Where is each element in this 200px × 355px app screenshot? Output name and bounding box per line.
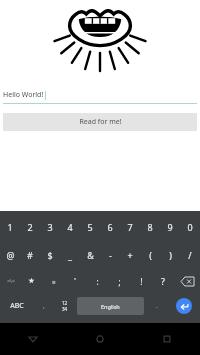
button[interactable]: Read for me! xyxy=(3,113,197,131)
button[interactable]: 2 xyxy=(20,213,40,241)
button[interactable]: ★ xyxy=(21,269,42,293)
staticText: $ xyxy=(47,249,53,261)
button[interactable]: ! xyxy=(130,269,152,293)
staticText: 7 xyxy=(127,221,133,233)
staticText: ▪ xyxy=(51,278,56,285)
staticText: 1 xyxy=(7,221,13,233)
staticText: ★ xyxy=(28,277,35,285)
button[interactable]: Numbers xyxy=(54,293,75,319)
staticText: ( xyxy=(149,249,152,261)
staticText: : xyxy=(96,276,99,287)
button[interactable]: ( xyxy=(140,241,160,269)
button[interactable]: ? xyxy=(152,269,174,293)
staticText: ; xyxy=(118,276,121,287)
staticText: ! xyxy=(140,275,143,287)
button[interactable]: Home xyxy=(66,323,133,355)
button[interactable]: / xyxy=(180,241,200,269)
button[interactable]: ABC xyxy=(0,293,33,319)
button[interactable]: =\< xyxy=(0,269,21,293)
staticText: 6 xyxy=(107,221,113,233)
button[interactable]: Hello World! xyxy=(3,90,197,104)
staticText: ABC xyxy=(10,301,24,311)
button[interactable]: - xyxy=(100,241,120,269)
staticText: 0 xyxy=(187,221,193,233)
button[interactable]: # xyxy=(20,241,40,269)
button[interactable]: : xyxy=(86,269,108,293)
button[interactable]: ▪ xyxy=(42,269,64,293)
button[interactable]: 9 xyxy=(160,213,180,241)
staticText: 4 xyxy=(67,221,73,233)
button[interactable]: 0 xyxy=(180,213,200,241)
button[interactable]: Backspace xyxy=(174,269,200,293)
staticText: 34 xyxy=(62,306,68,312)
button[interactable]: 1 xyxy=(0,213,20,241)
staticText: 5 xyxy=(87,221,93,233)
staticText: # xyxy=(27,249,33,261)
staticText: 12 xyxy=(62,300,68,306)
staticText: =\< xyxy=(7,278,15,285)
button[interactable]: Back xyxy=(0,323,66,355)
staticText: . xyxy=(156,301,158,311)
button[interactable]: @ xyxy=(0,241,20,269)
button[interactable]: ' xyxy=(64,269,86,293)
staticText: + xyxy=(127,249,133,261)
button[interactable]: Recents xyxy=(133,323,200,355)
staticText: 2 xyxy=(27,221,33,233)
button[interactable]: _ xyxy=(60,241,80,269)
staticText: 8 xyxy=(147,221,153,233)
staticText: Hello World! xyxy=(3,90,44,100)
staticText: @ xyxy=(6,249,15,261)
staticText: English xyxy=(101,303,120,310)
staticText: 3 xyxy=(47,221,53,233)
staticText: 9 xyxy=(167,221,173,233)
staticText: ' xyxy=(74,276,76,286)
button[interactable]: ) xyxy=(160,241,180,269)
staticText: / xyxy=(188,249,192,261)
button[interactable]: 5 xyxy=(80,213,100,241)
button[interactable]: 4 xyxy=(60,213,80,241)
button[interactable]: 3 xyxy=(40,213,60,241)
staticText: - xyxy=(109,249,112,261)
button[interactable]: + xyxy=(120,241,140,269)
button[interactable]: ; xyxy=(108,269,130,293)
button[interactable]: English xyxy=(77,297,144,315)
staticText: , xyxy=(43,301,45,311)
button[interactable]: 6 xyxy=(100,213,120,241)
staticText: Read for me! xyxy=(79,117,122,127)
button[interactable]: Enter xyxy=(167,293,200,319)
other: Speak xyxy=(62,6,138,72)
button[interactable]: 7 xyxy=(120,213,140,241)
staticText: ? xyxy=(161,275,165,287)
button[interactable]: $ xyxy=(40,241,60,269)
button[interactable]: & xyxy=(80,241,100,269)
staticText: _ xyxy=(68,249,72,261)
staticText: & xyxy=(87,249,94,261)
button[interactable]: 8 xyxy=(140,213,160,241)
staticText: ) xyxy=(169,249,172,261)
button[interactable]: , xyxy=(33,293,54,319)
